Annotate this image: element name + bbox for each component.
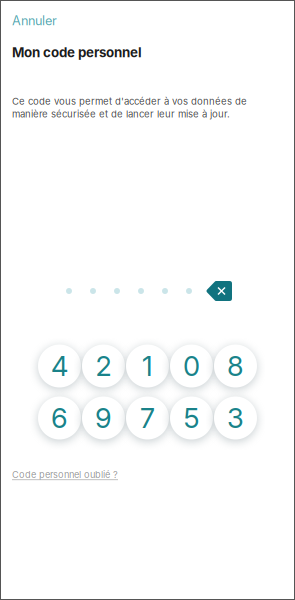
button[interactable]: 2 [81,344,125,388]
staticText: 6 [51,401,68,435]
staticText: 7 [140,401,155,435]
button[interactable]: 0 [169,344,213,388]
button[interactable]: Annuler [0,0,67,32]
staticText: 1 [142,349,153,383]
staticText: 9 [95,401,112,435]
staticText: 0 [183,349,200,383]
button[interactable]: Code personnel oublié ? [0,466,130,483]
staticText: Annuler [12,13,57,28]
button[interactable]: 7 [125,396,169,440]
staticText: 5 [183,401,199,435]
staticText: 4 [51,349,68,383]
staticText: 8 [227,349,244,383]
staticText: Code personnel oublié ? [12,469,118,480]
button[interactable]: 1 [125,344,169,388]
staticText: 3 [227,401,244,435]
staticText: 2 [95,349,111,383]
button[interactable]: 5 [169,396,213,440]
button[interactable]: 9 [81,396,125,440]
button[interactable]: 3 [213,396,257,440]
button[interactable]: 4 [37,344,81,388]
staticText: Ce code vous permet d'accéder à vos donn… [12,95,247,120]
button[interactable]: Effacer [206,281,232,301]
staticText: Mon code personnel [12,44,142,60]
button[interactable]: 8 [213,344,257,388]
button[interactable]: 6 [37,396,81,440]
